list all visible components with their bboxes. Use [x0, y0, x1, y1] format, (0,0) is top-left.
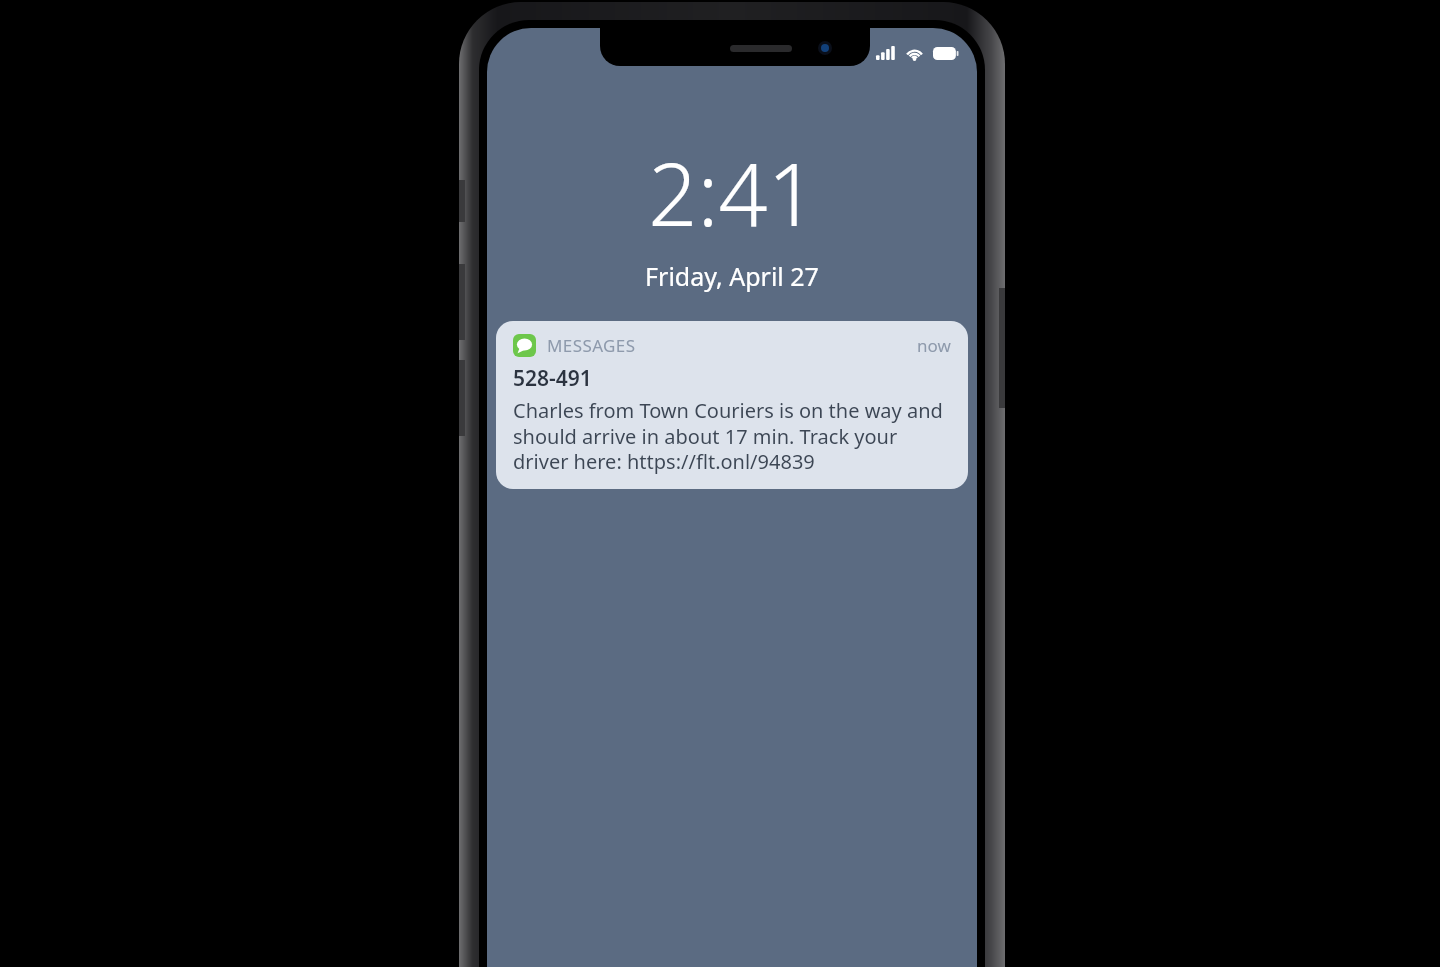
- staticText: Friday, April 27: [645, 259, 819, 293]
- staticText: now: [917, 334, 951, 357]
- staticText: 2:41: [648, 134, 817, 251]
- staticText: MESSAGES: [547, 334, 636, 357]
- staticText: Charles from Town Couriers is on the way…: [513, 397, 951, 474]
- staticText: 528-491: [513, 364, 592, 393]
- other: Messages: [513, 334, 536, 357]
- button[interactable]: Messages: [496, 321, 968, 489]
